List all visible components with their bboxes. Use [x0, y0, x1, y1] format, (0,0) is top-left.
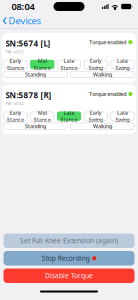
button[interactable]: Late: [110, 60, 134, 69]
staticText: Walking: [93, 71, 112, 78]
button[interactable]: Stop Recording: [3, 251, 134, 265]
staticText: Swing: [115, 116, 129, 123]
staticText: Devices: [8, 15, 40, 27]
staticText: Swing: [115, 64, 129, 71]
button[interactable]: Set Full Knee Extension (again): [3, 233, 134, 248]
button[interactable]: Late: [57, 112, 81, 121]
staticText: Early: [9, 109, 21, 116]
button[interactable]: Walking: [70, 123, 134, 130]
button[interactable]: Early: [3, 112, 27, 121]
staticText: Late: [117, 57, 128, 64]
staticText: SN:5674 [L]: [5, 38, 50, 49]
staticText: Stop Recording: [42, 254, 90, 263]
button[interactable]: Disable Torque: [3, 268, 134, 283]
staticText: Walking: [93, 123, 112, 130]
button[interactable]: Devices: [0, 12, 45, 30]
staticText: Mid: [38, 57, 47, 64]
staticText: Torque enabled: [89, 39, 126, 46]
staticText: Stance: [7, 116, 24, 123]
staticText: FW: v0.0.2: [5, 49, 23, 54]
staticText: Late: [63, 109, 74, 116]
staticText: Early: [90, 109, 102, 116]
staticText: Set Full Knee Extension (again): [20, 236, 118, 245]
staticText: FW: v0.0.2: [5, 101, 23, 106]
staticText: Stance: [34, 64, 51, 71]
staticText: 08:04: [11, 0, 34, 13]
staticText: Stance: [60, 116, 77, 123]
button[interactable]: Standing: [3, 71, 68, 78]
staticText: Late: [63, 57, 74, 64]
staticText: Stance: [34, 116, 51, 123]
button[interactable]: Early: [3, 60, 27, 69]
staticText: Stance: [7, 64, 24, 71]
staticText: Late: [117, 109, 128, 116]
staticText: Early: [90, 57, 102, 64]
staticText: Disable Torque: [45, 271, 93, 280]
staticText: Torque enabled: [89, 90, 126, 97]
staticText: Mid: [38, 109, 47, 116]
button[interactable]: Late: [110, 112, 134, 121]
button[interactable]: Early: [84, 112, 108, 121]
button[interactable]: Early: [84, 60, 108, 69]
staticText: Early: [9, 57, 21, 64]
button[interactable]: Late: [57, 60, 81, 69]
staticText: Swing: [89, 116, 103, 123]
staticText: SN:5878 [R]: [5, 90, 51, 100]
staticText: Stance: [60, 64, 77, 71]
button[interactable]: Mid: [30, 112, 54, 121]
button[interactable]: Mid: [30, 60, 54, 69]
staticText: Standing: [25, 123, 46, 130]
staticText: Standing: [25, 71, 46, 78]
button[interactable]: Walking: [70, 71, 134, 78]
staticText: Swing: [89, 64, 103, 71]
button[interactable]: Standing: [3, 123, 68, 130]
